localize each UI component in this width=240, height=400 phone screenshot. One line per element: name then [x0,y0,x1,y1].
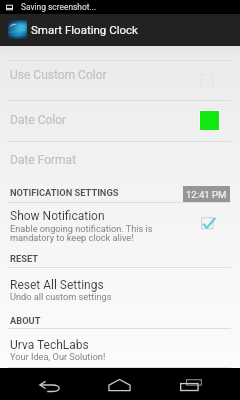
staticText: ABOUT [10,315,41,326]
button[interactable]: Recent apps [169,368,212,400]
button[interactable]: Date Format [10,153,77,167]
staticText: Undo all custom settings [10,291,112,302]
staticText: 12:41 PM [186,189,227,200]
button[interactable]: Date Color [10,113,67,127]
button[interactable]: Home [98,368,141,400]
button[interactable]: Floating clock overlay [183,186,230,202]
button[interactable]: Use Custom Color [10,68,107,82]
staticText: Smart Floating Clock [31,23,138,36]
button[interactable]: Back [28,368,71,400]
staticText: RESET [10,253,38,264]
button[interactable]: Urva TechLabs [10,338,89,352]
button[interactable]: Reset All Settings [10,278,104,292]
button[interactable]: Show Notification [10,209,105,223]
staticText: Your Idea, Our Solution! [10,351,106,362]
staticText: NOTIFICATION SETTINGS [10,187,119,198]
staticText: Saving screenshot... [21,2,97,12]
button[interactable]: Show notification checkbox [201,217,216,230]
staticText: Enable ongoing notification. This is [10,223,153,234]
staticText: mandatory to keep clock alive! [10,232,134,243]
button[interactable]: Date color swatch [199,110,220,131]
